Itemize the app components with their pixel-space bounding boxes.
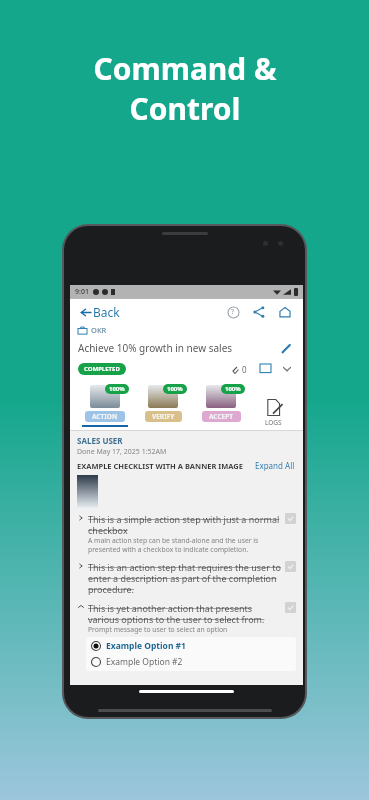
staticText: Example Option #2 [106, 656, 183, 668]
staticText: Achieve 10% growth in new sales [78, 341, 233, 355]
staticText: OKR [91, 325, 107, 335]
button[interactable]: Example Option #2 [91, 656, 291, 668]
button[interactable]: This is yet another action that presents… [77, 602, 296, 634]
staticText: A main action step can be stand-alone an… [88, 536, 281, 554]
button[interactable]: 100% [134, 385, 192, 427]
staticText: 100% [167, 385, 183, 393]
staticText: LOGS [265, 418, 282, 427]
button[interactable]: This is a simple action step with just a… [77, 513, 296, 554]
button[interactable]: 100% [76, 385, 134, 427]
button[interactable]: 0 [228, 362, 249, 377]
staticText: ? [231, 307, 235, 317]
button[interactable]: Help [223, 302, 243, 322]
button[interactable]: LOGS [250, 398, 297, 427]
button[interactable]: Example Option #1 [91, 640, 291, 652]
staticText: VERIFY [152, 412, 175, 421]
staticText: Prompt message to user to select an opti… [88, 625, 228, 634]
staticText: Expand All [255, 460, 295, 471]
staticText: This is yet another action that presents… [88, 602, 281, 625]
staticText: ACCEPT [209, 412, 234, 421]
button[interactable]: COMPLETED [78, 363, 126, 375]
button[interactable]: Edit [277, 339, 295, 357]
staticText: 0 [242, 364, 247, 375]
button[interactable]: Share [249, 302, 269, 322]
staticText: ACTION [92, 412, 118, 421]
button[interactable]: This is an action step that requires the… [77, 561, 296, 595]
button[interactable]: Expand [279, 361, 295, 377]
button[interactable]: Comments [257, 361, 273, 377]
button[interactable]: Expand All [254, 459, 296, 472]
staticText: Done May 17, 2025 1:52AM [77, 447, 167, 457]
staticText: SALES USER [77, 435, 123, 446]
staticText: EXAMPLE CHECKLIST WITH A BANNER IMAGE [77, 461, 243, 471]
staticText: This is a simple action step with just a… [88, 513, 281, 536]
staticText: 100% [225, 385, 241, 393]
staticText: Back [93, 304, 120, 320]
staticText: This is an action step that requires the… [88, 561, 281, 595]
button[interactable]: Home [275, 302, 295, 322]
staticText: COMPLETED [84, 365, 120, 373]
button[interactable]: 100% [192, 385, 250, 427]
staticText: Command & Control [93, 48, 277, 129]
button[interactable]: Back [78, 302, 122, 322]
staticText: 100% [109, 385, 125, 393]
staticText: 9:01 [75, 287, 89, 297]
staticText: Example Option #1 [106, 640, 186, 652]
